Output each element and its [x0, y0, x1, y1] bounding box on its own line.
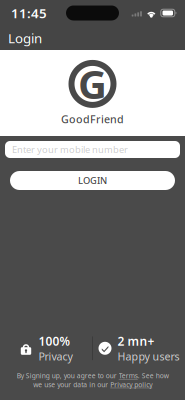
staticText: 2 mn+: [117, 333, 154, 349]
staticText: 100%: [38, 333, 70, 349]
button[interactable]: LOGIN: [10, 171, 175, 190]
staticText: Enter your mobile number: [12, 143, 128, 156]
staticText: By Signing up, you agree to our Terms. S…: [16, 371, 168, 389]
staticText: Privacy: [38, 349, 72, 363]
staticText: LOGIN: [78, 174, 107, 187]
staticText: Happy users: [117, 349, 179, 363]
staticText: G: [78, 57, 107, 110]
staticText: Login: [8, 29, 42, 47]
staticText: 11:45: [11, 4, 47, 22]
staticText: GoodFriend: [61, 112, 124, 126]
